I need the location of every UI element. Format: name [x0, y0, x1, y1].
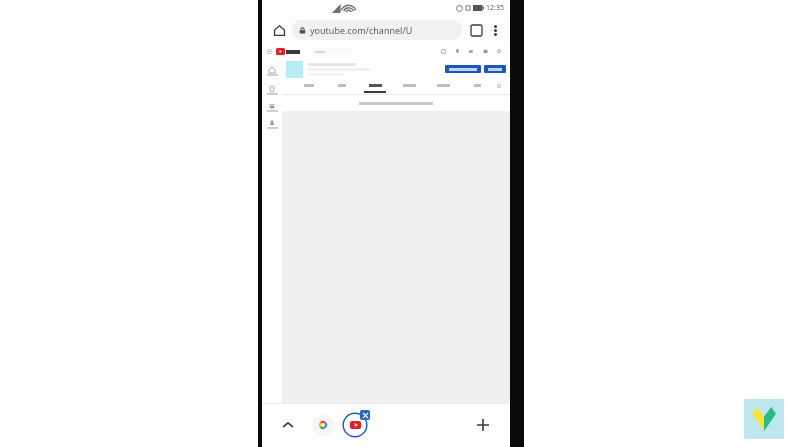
button[interactable]: Subscriptions: [262, 99, 282, 116]
button[interactable]: Tab 4: [392, 84, 426, 87]
button[interactable]: [312, 48, 352, 55]
button[interactable]: Tab 3: [358, 84, 392, 87]
button[interactable]: Close tab: [360, 410, 370, 420]
button[interactable]: Search channel: [494, 81, 504, 91]
button[interactable]: Tab switcher: [466, 20, 486, 40]
button[interactable]: Header action: [482, 48, 489, 55]
staticText: youtube.com/channel/U: [310, 24, 413, 36]
button[interactable]: Google: [312, 414, 334, 436]
button[interactable]: Tab 5: [426, 84, 460, 87]
button[interactable]: Tab 2: [325, 84, 358, 87]
button[interactable]: [276, 48, 300, 55]
button[interactable]: Header action: [496, 48, 503, 55]
button[interactable]: Menu: [265, 47, 274, 56]
button[interactable]: [484, 65, 506, 73]
button[interactable]: youtube.com/channel/U: [292, 20, 462, 40]
button[interactable]: Expand: [276, 413, 300, 437]
button[interactable]: Header action: [440, 48, 447, 55]
button[interactable]: Tab 6: [460, 84, 494, 87]
button[interactable]: Home: [262, 63, 282, 80]
button[interactable]: YouTube tab: [342, 412, 368, 438]
button[interactable]: [445, 65, 481, 73]
button[interactable]: Library: [262, 116, 282, 133]
button[interactable]: Home: [268, 19, 290, 41]
button[interactable]: Header action: [468, 48, 475, 55]
button[interactable]: Shorts: [262, 82, 282, 99]
button[interactable]: More options: [486, 21, 504, 39]
button[interactable]: New tab: [470, 412, 496, 438]
button[interactable]: Header action: [454, 48, 461, 55]
button[interactable]: Tab 1: [292, 84, 325, 87]
staticText: 12:35: [486, 3, 504, 13]
